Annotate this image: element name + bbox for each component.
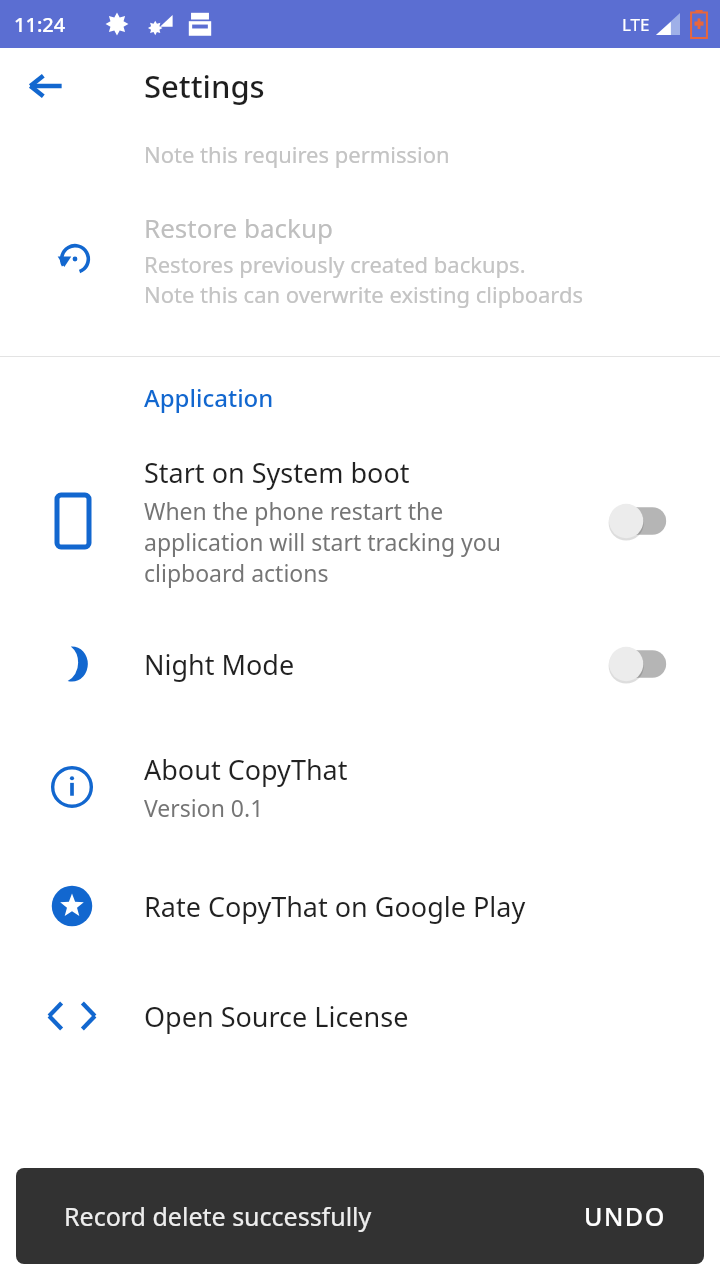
staticText: About CopyThat (144, 751, 348, 788)
staticText: 11:24 (14, 11, 66, 38)
staticText: Restore backup (144, 210, 334, 245)
staticText: Open Source License (144, 998, 409, 1035)
staticText: UNDO (584, 1199, 666, 1233)
staticText: Note this can overwrite existing clipboa… (144, 279, 584, 309)
staticText: Version 0.1 (144, 792, 264, 823)
staticText: Rate CopyThat on Google Play (144, 888, 526, 925)
staticText: clipboard actions (144, 557, 329, 588)
button[interactable]: Start on System boot (0, 437, 720, 605)
staticText: Start on System boot (144, 454, 410, 491)
staticText: Restores previously created backups. (144, 249, 526, 279)
button[interactable]: About CopyThat (0, 723, 720, 851)
button[interactable]: Open Source License (0, 961, 720, 1071)
staticText: Note this requires permission (144, 139, 450, 169)
button[interactable]: Note this requires permission (0, 124, 720, 184)
staticText: Night Mode (144, 646, 295, 683)
staticText: application will start tracking you (144, 526, 501, 557)
button[interactable]: Record delete successfully (16, 1168, 704, 1264)
staticText: Record delete successfully (64, 1199, 372, 1233)
button[interactable]: Restore backup (0, 184, 720, 334)
button[interactable]: Toggle (604, 642, 678, 686)
button[interactable]: Rate CopyThat on Google Play (0, 851, 720, 961)
staticText: Application (144, 381, 274, 414)
button[interactable]: UNDO (574, 1189, 676, 1243)
button[interactable]: Toggle (604, 499, 678, 543)
button[interactable]: Back (22, 62, 70, 110)
staticText: Settings (144, 65, 265, 107)
button[interactable]: Night Mode (0, 605, 720, 723)
staticText: When the phone restart the (144, 495, 444, 526)
staticText: LTE (622, 13, 650, 36)
